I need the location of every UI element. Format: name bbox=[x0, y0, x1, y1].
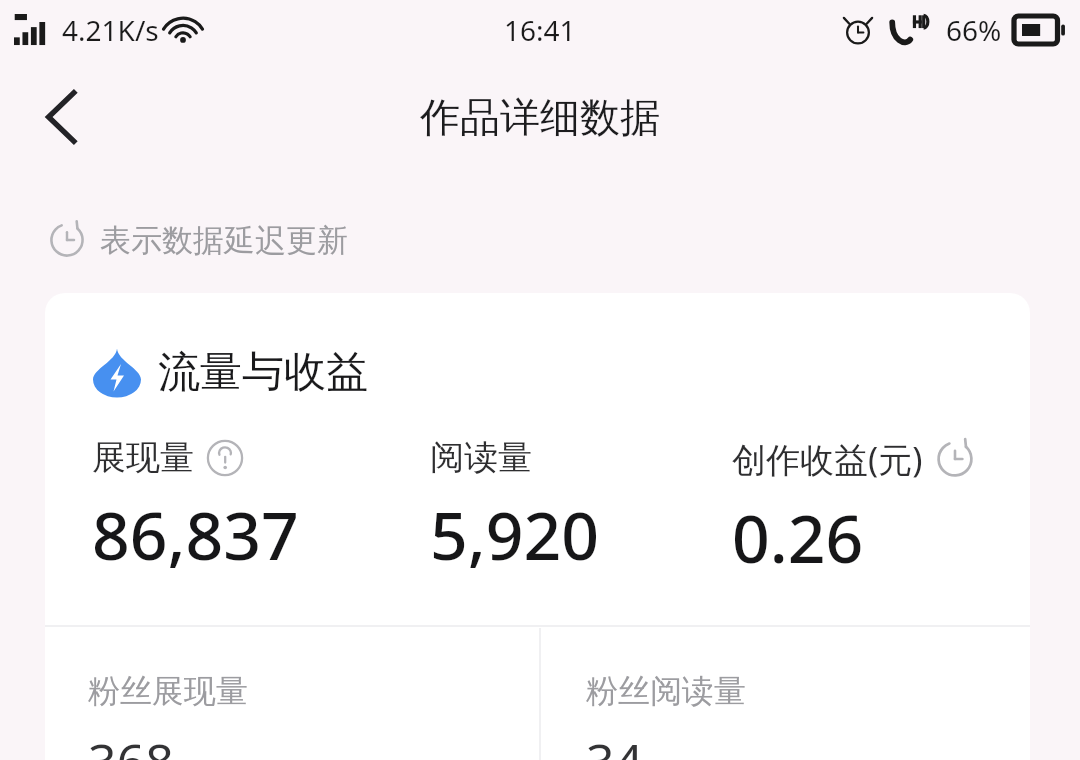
button[interactable]: Help bbox=[204, 437, 246, 479]
staticText: 作品详细数据 bbox=[420, 92, 660, 142]
staticText: 流量与收益 bbox=[158, 346, 368, 399]
staticText: 0.26 bbox=[732, 492, 864, 582]
staticText: 66% bbox=[946, 11, 1002, 49]
staticText: 粉丝展现量 bbox=[88, 671, 248, 711]
staticText: 表示数据延迟更新 bbox=[100, 221, 348, 260]
staticText: 5,920 bbox=[430, 489, 600, 579]
staticText: 阅读量 bbox=[430, 436, 532, 479]
staticText: 粉丝阅读量 bbox=[586, 671, 746, 711]
staticText: 86,837 bbox=[92, 489, 299, 579]
button[interactable]: Back bbox=[24, 78, 102, 156]
staticText: 4.21K/s bbox=[62, 11, 159, 49]
staticText: 创作收益(元) bbox=[732, 436, 923, 482]
staticText: 368 bbox=[88, 727, 174, 760]
staticText: 16:41 bbox=[504, 11, 576, 49]
staticText: 展现量 bbox=[92, 436, 194, 479]
staticText: 34 bbox=[586, 727, 644, 760]
